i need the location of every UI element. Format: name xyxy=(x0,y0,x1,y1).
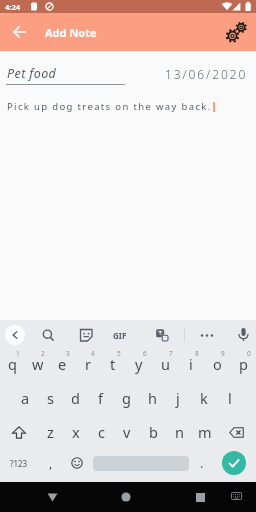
staticText: Pet food xyxy=(7,65,57,82)
button[interactable]: f xyxy=(88,381,113,415)
button[interactable]: m xyxy=(192,415,218,449)
button[interactable]: o xyxy=(204,347,230,381)
staticText: a xyxy=(21,388,30,408)
staticText: c xyxy=(98,422,105,442)
button[interactable]: x xyxy=(63,415,88,449)
button[interactable] xyxy=(8,21,30,43)
button[interactable] xyxy=(225,18,253,46)
staticText: o xyxy=(213,354,222,374)
button[interactable]: a xyxy=(13,381,38,415)
button[interactable] xyxy=(42,487,62,507)
button[interactable]: n xyxy=(166,415,192,449)
staticText: n xyxy=(175,422,184,442)
button[interactable]: i xyxy=(178,347,204,381)
staticText: ?123 xyxy=(10,458,28,469)
button[interactable]: k xyxy=(191,381,217,415)
button[interactable] xyxy=(5,325,25,345)
staticText: . xyxy=(200,455,204,472)
staticText: m xyxy=(198,422,212,442)
staticText: g xyxy=(122,388,131,408)
staticText: s xyxy=(47,388,54,408)
button[interactable] xyxy=(228,489,244,503)
button[interactable]: z xyxy=(38,415,63,449)
button[interactable] xyxy=(222,451,246,475)
staticText: 5 xyxy=(117,349,121,358)
staticText: d xyxy=(71,388,80,408)
button[interactable]: , xyxy=(38,449,64,477)
button[interactable] xyxy=(236,327,251,342)
button[interactable]: s xyxy=(38,381,63,415)
staticText: Pick up dog treats on the way back. xyxy=(7,100,212,113)
button[interactable]: h xyxy=(139,381,165,415)
button[interactable]: c xyxy=(88,415,114,449)
staticText: l xyxy=(228,388,232,408)
staticText: h xyxy=(148,388,157,408)
button[interactable] xyxy=(199,328,215,344)
staticText: , xyxy=(49,455,53,472)
staticText: p xyxy=(239,354,248,374)
staticText: y xyxy=(135,354,143,374)
button[interactable]: d xyxy=(63,381,88,415)
staticText: 1 xyxy=(16,349,20,358)
button[interactable]: ?123 xyxy=(0,449,38,477)
staticText: 4:24 xyxy=(5,2,20,12)
staticText: 9 xyxy=(221,349,225,358)
staticText: 13/06/2020 xyxy=(165,66,248,82)
button[interactable]: y xyxy=(126,347,152,381)
button[interactable] xyxy=(155,328,170,343)
button[interactable] xyxy=(190,487,210,507)
button[interactable] xyxy=(116,487,136,507)
staticText: 8 xyxy=(195,349,199,358)
button[interactable]: v xyxy=(114,415,140,449)
button[interactable]: j xyxy=(165,381,191,415)
staticText: w xyxy=(32,354,44,374)
button[interactable]: . xyxy=(192,449,212,477)
button[interactable]: r xyxy=(75,347,100,381)
staticText: k xyxy=(200,388,208,408)
staticText: t xyxy=(110,354,116,374)
staticText: 0 xyxy=(247,349,251,358)
staticText: 6 xyxy=(143,349,147,358)
staticText: q xyxy=(8,354,17,374)
staticText: v xyxy=(123,422,131,442)
button[interactable]: l xyxy=(217,381,243,415)
staticText: u xyxy=(161,354,170,374)
button[interactable]: GIF xyxy=(113,330,127,341)
button[interactable] xyxy=(41,328,56,343)
button[interactable] xyxy=(79,328,94,343)
button[interactable] xyxy=(64,449,90,477)
button[interactable]: u xyxy=(152,347,178,381)
button[interactable]: p xyxy=(230,347,256,381)
staticText: x xyxy=(72,422,80,442)
staticText: z xyxy=(47,422,54,442)
staticText: j xyxy=(176,388,180,408)
button[interactable]: g xyxy=(113,381,139,415)
button[interactable]: w xyxy=(25,347,50,381)
staticText: 7 xyxy=(169,349,173,358)
staticText: 3 xyxy=(66,349,70,358)
staticText: 4 xyxy=(91,349,95,358)
button[interactable] xyxy=(218,415,256,449)
staticText: e xyxy=(58,354,67,374)
staticText: b xyxy=(149,422,158,442)
staticText: f xyxy=(98,388,103,408)
button[interactable] xyxy=(0,415,38,449)
staticText: r xyxy=(85,354,91,374)
button[interactable]: e xyxy=(50,347,75,381)
staticText: i xyxy=(189,354,193,374)
staticText: 2 xyxy=(41,349,45,358)
button[interactable]: q xyxy=(0,347,25,381)
button[interactable]: b xyxy=(140,415,166,449)
staticText: Add Note xyxy=(45,25,97,40)
button[interactable]: t xyxy=(100,347,126,381)
